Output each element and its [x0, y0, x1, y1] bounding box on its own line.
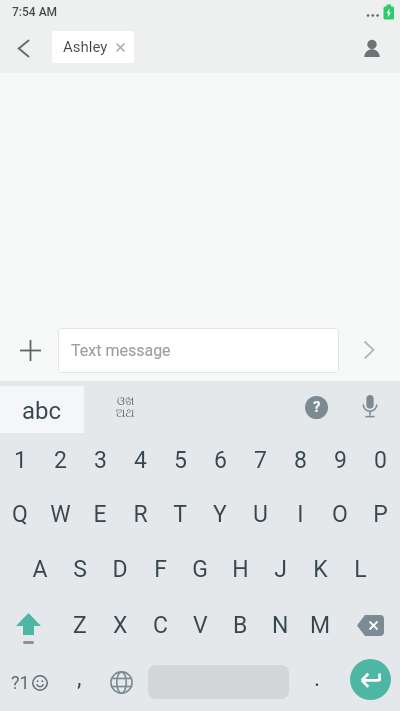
- button[interactable]: E: [80, 487, 120, 541]
- staticText: X: [113, 612, 128, 639]
- staticText: F: [154, 556, 167, 583]
- button[interactable]: C: [140, 597, 180, 653]
- button[interactable]: [100, 653, 142, 711]
- button[interactable]: 6: [200, 433, 240, 487]
- staticText: P: [373, 501, 388, 528]
- button[interactable]: 2: [40, 433, 80, 487]
- button[interactable]: 9: [320, 433, 360, 487]
- staticText: J: [274, 556, 287, 583]
- button[interactable]: [350, 27, 394, 71]
- staticText: 5: [174, 447, 187, 474]
- button[interactable]: 3: [80, 433, 120, 487]
- staticText: 7:54 AM: [12, 5, 58, 19]
- button[interactable]: ?1: [0, 653, 58, 711]
- button[interactable]: A: [20, 541, 60, 597]
- button[interactable]: B: [220, 597, 260, 653]
- staticText: 6: [214, 447, 227, 474]
- button[interactable]: 8: [280, 433, 320, 487]
- staticText: M: [310, 612, 331, 639]
- button[interactable]: [8, 328, 52, 372]
- staticText: U: [253, 501, 268, 528]
- staticText: ଅଥ: [116, 407, 135, 419]
- staticText: .: [314, 665, 321, 692]
- button[interactable]: 5: [160, 433, 200, 487]
- staticText: 7: [254, 447, 267, 474]
- button[interactable]: M: [300, 597, 340, 653]
- button[interactable]: F: [140, 541, 180, 597]
- staticText: ଓଖ: [117, 395, 135, 407]
- staticText: 0: [374, 447, 387, 474]
- button[interactable]: [347, 328, 391, 372]
- staticText: Q: [12, 501, 28, 528]
- staticText: Y: [213, 501, 227, 528]
- button[interactable]: 1: [0, 433, 40, 487]
- button[interactable]: S: [60, 541, 100, 597]
- button[interactable]: G: [180, 541, 220, 597]
- button[interactable]: O: [320, 487, 360, 541]
- button[interactable]: ଓଖ: [103, 385, 147, 429]
- button[interactable]: [350, 659, 391, 700]
- staticText: 8: [294, 447, 307, 474]
- staticText: Ashley: [63, 38, 108, 56]
- button[interactable]: Text message: [58, 328, 339, 373]
- staticText: C: [153, 612, 168, 639]
- staticText: abc: [22, 397, 62, 425]
- button[interactable]: L: [340, 541, 380, 597]
- button[interactable]: U: [240, 487, 280, 541]
- button[interactable]: abc: [0, 386, 84, 433]
- button[interactable]: [348, 385, 392, 429]
- staticText: K: [313, 556, 328, 583]
- button[interactable]: ,: [58, 653, 100, 711]
- staticText: H: [232, 556, 249, 583]
- button[interactable]: X: [100, 597, 140, 653]
- button[interactable]: ?: [294, 385, 338, 429]
- staticText: A: [32, 556, 48, 583]
- button[interactable]: D: [100, 541, 140, 597]
- staticText: L: [354, 556, 367, 583]
- staticText: 9: [334, 447, 347, 474]
- staticText: S: [73, 556, 87, 583]
- staticText: ?1: [11, 672, 30, 693]
- button[interactable]: Ashley: [52, 31, 134, 63]
- button[interactable]: [142, 653, 295, 711]
- staticText: ?: [313, 398, 321, 416]
- button[interactable]: Q: [0, 487, 40, 541]
- staticText: D: [112, 556, 128, 583]
- button[interactable]: W: [40, 487, 80, 541]
- button[interactable]: P: [360, 487, 400, 541]
- button[interactable]: J: [260, 541, 300, 597]
- staticText: R: [133, 501, 148, 528]
- staticText: G: [192, 556, 208, 583]
- button[interactable]: .: [295, 653, 339, 711]
- staticText: T: [173, 501, 187, 528]
- staticText: 3: [94, 447, 107, 474]
- button[interactable]: 0: [360, 433, 400, 487]
- staticText: I: [297, 501, 304, 528]
- staticText: N: [272, 612, 289, 639]
- button[interactable]: [0, 597, 60, 653]
- button[interactable]: Z: [60, 597, 100, 653]
- button[interactable]: 4: [120, 433, 160, 487]
- staticText: 2: [54, 447, 67, 474]
- button[interactable]: K: [300, 541, 340, 597]
- staticText: W: [50, 501, 71, 528]
- button[interactable]: H: [220, 541, 260, 597]
- button[interactable]: [2, 28, 44, 68]
- button[interactable]: N: [260, 597, 300, 653]
- staticText: Z: [73, 612, 87, 639]
- staticText: E: [93, 501, 107, 528]
- button[interactable]: I: [280, 487, 320, 541]
- staticText: V: [193, 612, 208, 639]
- staticText: ,: [77, 665, 82, 692]
- staticText: O: [332, 501, 348, 528]
- staticText: Text message: [71, 341, 171, 360]
- staticText: B: [233, 612, 248, 639]
- button[interactable]: V: [180, 597, 220, 653]
- button[interactable]: [340, 597, 400, 653]
- button[interactable]: R: [120, 487, 160, 541]
- staticText: 4: [134, 447, 147, 474]
- button[interactable]: T: [160, 487, 200, 541]
- button[interactable]: Y: [200, 487, 240, 541]
- button[interactable]: 7: [240, 433, 280, 487]
- staticText: 1: [14, 447, 27, 474]
